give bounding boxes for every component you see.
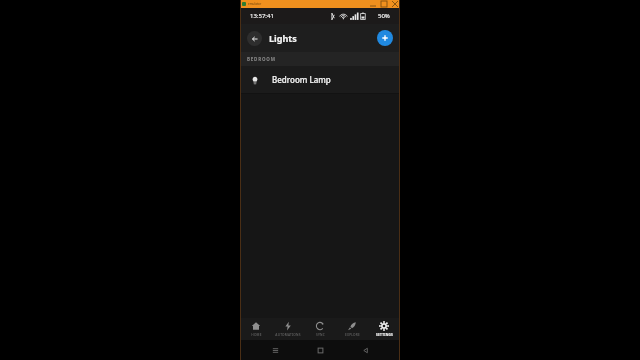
staticText: Lights bbox=[269, 32, 297, 44]
staticText: Bedroom Lamp bbox=[272, 74, 331, 85]
button[interactable]: Add light bbox=[377, 30, 393, 46]
button[interactable]: HOME bbox=[240, 318, 272, 340]
staticText: emulator bbox=[248, 2, 262, 6]
staticText: 50% bbox=[378, 12, 390, 20]
staticText: EXPLORE bbox=[345, 333, 360, 337]
button[interactable]: Bedroom Lamp bbox=[240, 66, 400, 93]
staticText: SETTINGS bbox=[376, 333, 393, 337]
button[interactable]: Recents bbox=[265, 341, 285, 359]
button[interactable]: Back bbox=[247, 31, 262, 46]
button[interactable]: Home bbox=[310, 341, 330, 359]
button[interactable]: EXPLORE bbox=[336, 318, 368, 340]
staticText: 13:57:41 bbox=[250, 12, 274, 20]
button[interactable]: SETTINGS bbox=[368, 318, 400, 340]
button[interactable]: SYNC bbox=[304, 318, 336, 340]
staticText: AUTOMATIONS bbox=[275, 333, 301, 337]
button[interactable]: AUTOMATIONS bbox=[272, 318, 304, 340]
staticText: BEDROOM bbox=[247, 56, 276, 62]
staticText: SYNC bbox=[316, 333, 325, 337]
staticText: HOME bbox=[251, 333, 262, 337]
button[interactable]: Back bbox=[355, 341, 375, 359]
